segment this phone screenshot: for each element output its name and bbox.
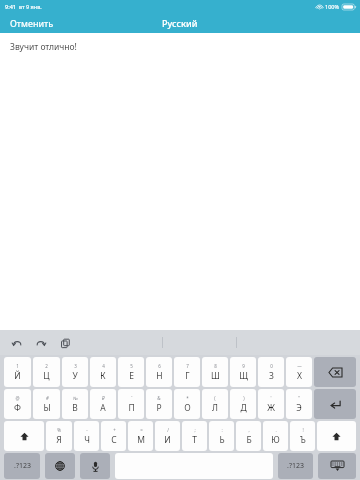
staticText: Д (240, 402, 247, 414)
staticText: Ц (43, 370, 50, 382)
button[interactable]: + (101, 421, 126, 451)
button[interactable]: Return (314, 389, 356, 419)
staticText: 100% (325, 3, 340, 10)
button[interactable]: ( (202, 389, 228, 419)
staticText: ( (214, 395, 216, 401)
button[interactable]: 1 (4, 357, 31, 387)
staticText: ` (131, 395, 133, 401)
staticText: 4 (102, 363, 105, 369)
button[interactable]: - (74, 421, 99, 451)
staticText: 5 (130, 363, 133, 369)
staticText: Л (212, 402, 218, 414)
staticText: З (269, 370, 274, 382)
button[interactable]: 3 (62, 357, 88, 387)
button[interactable]: 2 (33, 357, 60, 387)
button[interactable]: . (263, 421, 288, 451)
staticText: * (186, 395, 189, 401)
button[interactable]: Numbers (4, 453, 40, 479)
button[interactable]: ! (290, 421, 315, 451)
staticText: Ь (219, 434, 225, 446)
button[interactable]: ) (230, 389, 256, 419)
staticText: В (72, 402, 78, 414)
staticText: Ж (267, 402, 275, 414)
staticText: Ю (271, 434, 280, 446)
staticText: Г (185, 370, 190, 382)
button[interactable]: Dictation (80, 453, 110, 479)
staticText: О (184, 402, 191, 414)
button[interactable]: ' (258, 389, 284, 419)
staticText: ! (302, 427, 304, 433)
staticText: .?123 (287, 461, 304, 471)
button[interactable]: = (128, 421, 153, 451)
button[interactable]: # (33, 389, 60, 419)
staticText: : (221, 427, 223, 433)
button[interactable]: 4 (90, 357, 116, 387)
staticText: Ъ (300, 434, 306, 446)
staticText: № (73, 395, 78, 401)
button[interactable]: Отменить (0, 13, 64, 33)
staticText: Щ (239, 370, 248, 382)
staticText: 2 (45, 363, 48, 369)
button[interactable]: 8 (202, 357, 228, 387)
button[interactable]: ; (182, 421, 207, 451)
staticText: Я (56, 434, 62, 446)
button[interactable]: Hide keyboard (318, 453, 356, 479)
staticText: Ы (43, 402, 51, 414)
staticText: Т (192, 434, 197, 446)
staticText: & (157, 395, 161, 401)
button[interactable]: 6 (146, 357, 172, 387)
staticText: Э (296, 402, 302, 414)
staticText: Х (297, 370, 302, 382)
button[interactable]: Shift (4, 421, 44, 451)
button[interactable]: 7 (174, 357, 200, 387)
staticText: % (57, 427, 61, 433)
button[interactable]: Shift (317, 421, 356, 451)
staticText: М (137, 434, 145, 446)
staticText: Н (156, 370, 163, 382)
staticText: Отменить (10, 17, 54, 29)
button[interactable]: № (62, 389, 88, 419)
staticText: = (140, 427, 143, 433)
staticText: 3 (74, 363, 77, 369)
button[interactable]: : (209, 421, 234, 451)
button[interactable]: / (155, 421, 180, 451)
staticText: Ш (211, 370, 220, 382)
staticText: + (113, 427, 116, 433)
button[interactable]: * (174, 389, 200, 419)
button[interactable]: Backspace (314, 357, 356, 387)
button[interactable]: Redo (32, 334, 50, 352)
button[interactable]: ₽ (90, 389, 116, 419)
button[interactable]: , (236, 421, 261, 451)
button[interactable]: " (286, 389, 312, 419)
staticText: ' (270, 395, 272, 401)
button[interactable]: 5 (118, 357, 144, 387)
staticText: Звучит отлично! (10, 41, 77, 53)
button[interactable]: & (146, 389, 172, 419)
button[interactable]: @ (4, 389, 31, 419)
staticText: . (275, 427, 277, 433)
button[interactable]: Change keyboard (45, 453, 75, 479)
staticText: 9:41 (5, 3, 16, 10)
button[interactable]: ` (118, 389, 144, 419)
staticText: @ (15, 395, 20, 401)
button[interactable]: Numbers (278, 453, 313, 479)
staticText: Й (14, 370, 21, 382)
staticText: " (298, 395, 300, 401)
button[interactable]: Undo (8, 334, 26, 352)
staticText: У (72, 370, 78, 382)
staticText: П (128, 402, 135, 414)
staticText: , (248, 427, 250, 433)
button[interactable]: Paste (56, 334, 74, 352)
staticText: — (297, 363, 302, 369)
staticText: / (167, 427, 169, 433)
button[interactable]: 9 (230, 357, 256, 387)
staticText: С (111, 434, 117, 446)
staticText: 0 (270, 363, 273, 369)
staticText: Е (129, 370, 134, 382)
staticText: И (164, 434, 171, 446)
button[interactable]: % (46, 421, 72, 451)
staticText: А (100, 402, 106, 414)
button[interactable]: 0 (258, 357, 284, 387)
button[interactable]: — (286, 357, 312, 387)
